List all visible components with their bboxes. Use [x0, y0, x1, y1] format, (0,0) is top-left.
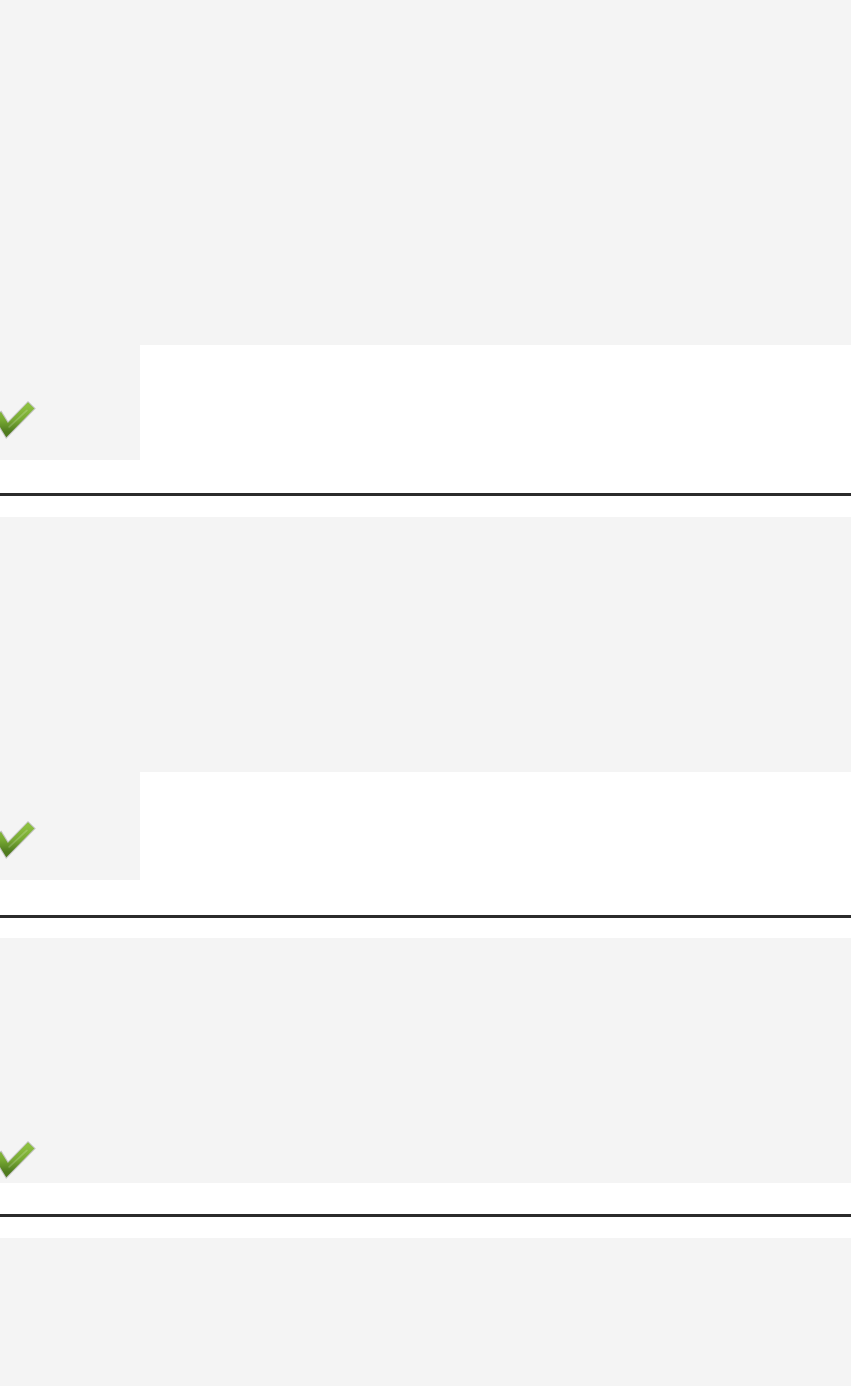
other: Verified — [0, 1146, 29, 1172]
other: Verified — [0, 406, 29, 432]
other: Verified — [0, 826, 29, 852]
button[interactable]: Verified — [0, 938, 851, 1214]
button[interactable]: Verified — [0, 517, 851, 915]
button[interactable]: Verified — [0, 0, 851, 493]
